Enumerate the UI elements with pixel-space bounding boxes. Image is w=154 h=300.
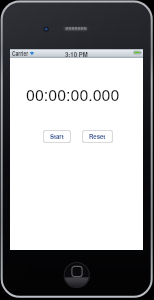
staticText: Reset bbox=[89, 132, 106, 141]
button[interactable]: Reset bbox=[83, 131, 112, 142]
staticText: Start bbox=[50, 132, 64, 141]
staticText: Carrier bbox=[12, 49, 29, 57]
staticText: 3:10 PM bbox=[65, 50, 88, 59]
button[interactable]: Home bbox=[62, 260, 92, 292]
staticText: 00:00:00.000 bbox=[26, 83, 120, 106]
button[interactable]: Start bbox=[44, 131, 70, 142]
